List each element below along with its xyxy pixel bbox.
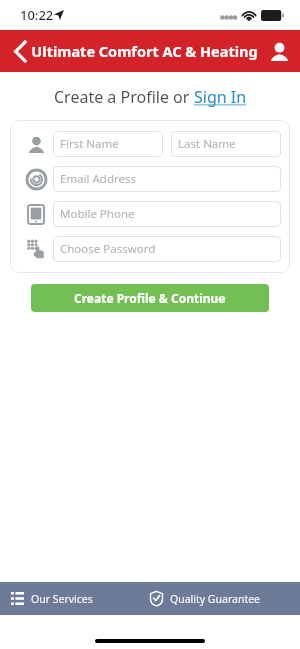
staticText: Email Address <box>60 171 137 187</box>
button[interactable]: Create Profile & Continue <box>31 284 269 312</box>
staticText: Quality Guarantee <box>170 592 261 606</box>
button[interactable]: Account <box>258 30 300 72</box>
staticText: Last Name <box>178 136 236 152</box>
button[interactable]: First Name <box>53 131 163 157</box>
button[interactable]: Mobile Phone <box>53 201 281 227</box>
button[interactable]: Sign In <box>194 86 247 108</box>
button[interactable]: Last Name <box>171 131 281 157</box>
staticText: Create a Profile or <box>54 86 194 108</box>
staticText: Our Services <box>31 592 93 606</box>
button[interactable]: Our Services <box>0 582 150 615</box>
button[interactable]: Choose Password <box>53 236 281 262</box>
staticText: Choose Password <box>60 241 156 257</box>
button[interactable]: Back <box>0 31 40 71</box>
button[interactable]: Quality Guarantee <box>150 582 300 615</box>
staticText: First Name <box>60 136 119 152</box>
staticText: Create Profile & Continue <box>74 290 226 306</box>
staticText: Sign In <box>194 86 247 108</box>
staticText: 10:22 <box>20 6 54 24</box>
button[interactable]: Email Address <box>53 166 281 192</box>
staticText: Mobile Phone <box>60 206 135 222</box>
staticText: Ultimate Comfort AC & Heating <box>31 41 258 61</box>
